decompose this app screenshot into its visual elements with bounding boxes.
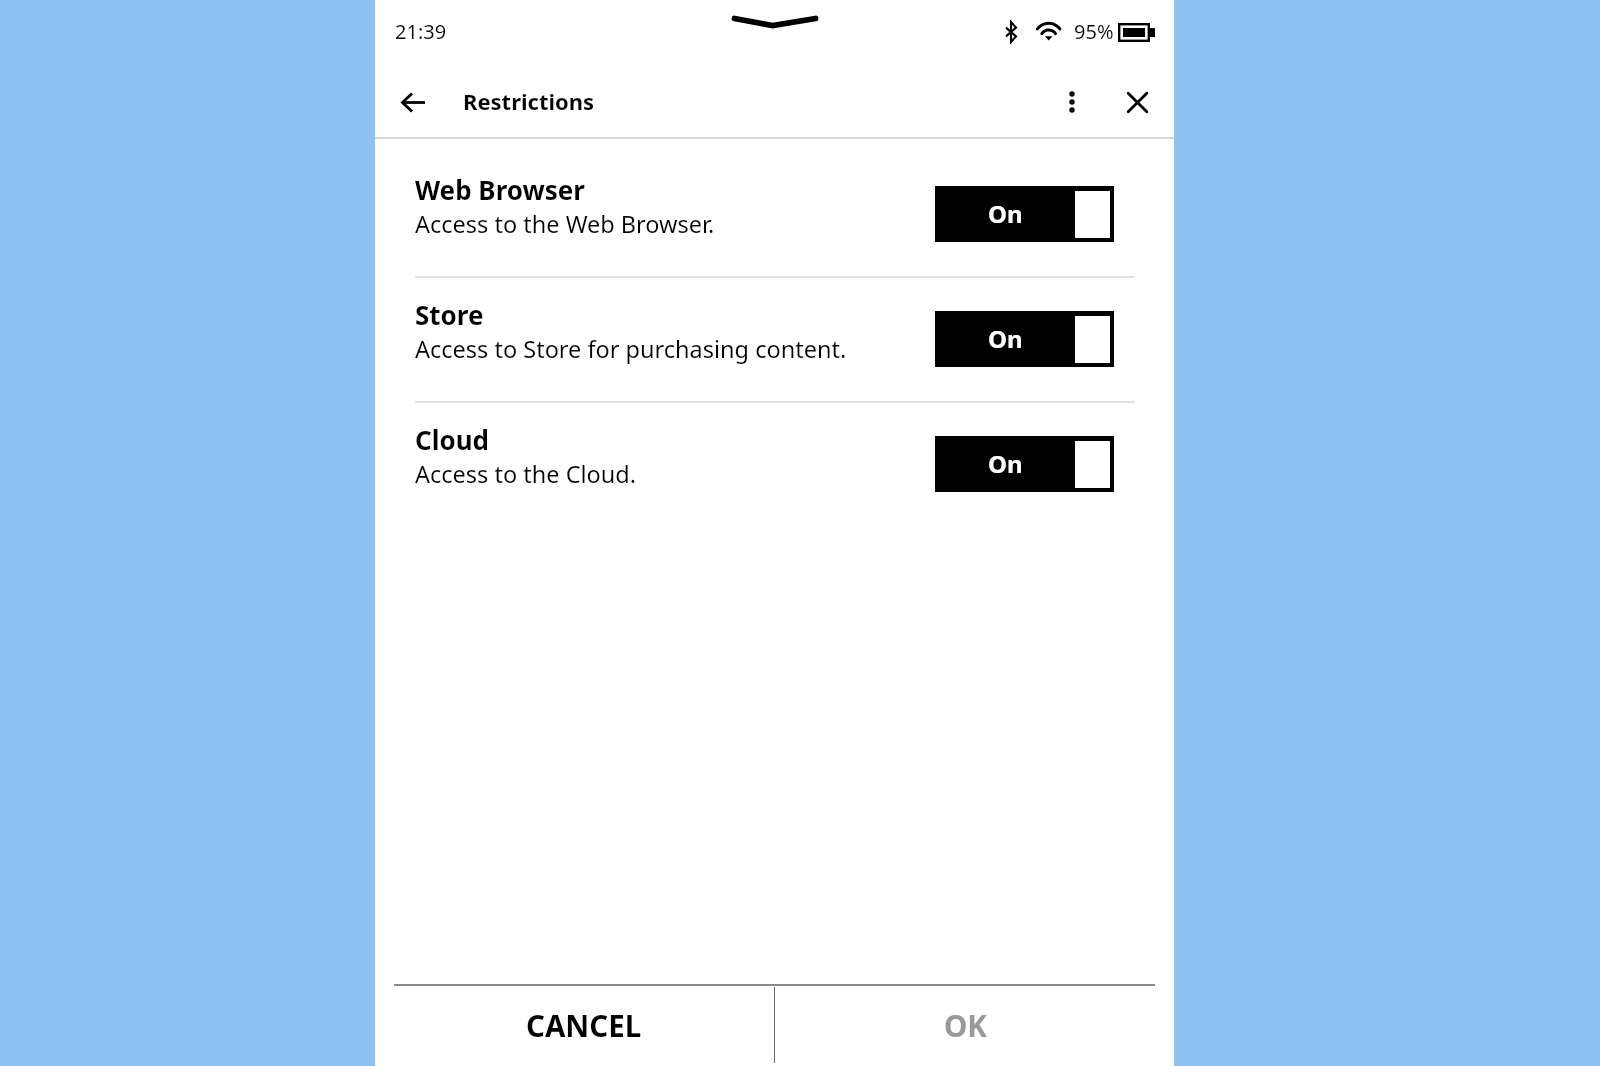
button[interactable]: Cloud <box>375 401 1174 526</box>
button[interactable]: Store <box>375 276 1174 401</box>
button[interactable]: CANCEL <box>394 984 774 1066</box>
button[interactable]: Web Browser <box>375 151 1174 276</box>
staticText: Access to the Cloud. <box>415 458 637 490</box>
button[interactable]: Back <box>388 79 438 125</box>
staticText: OK <box>944 1005 987 1045</box>
staticText: CANCEL <box>526 1005 642 1045</box>
staticText: On <box>988 322 1023 355</box>
button[interactable]: On <box>935 186 1114 242</box>
button[interactable]: OK <box>775 984 1156 1066</box>
button[interactable]: On <box>935 436 1114 492</box>
staticText: Access to the Web Browser. <box>415 208 715 240</box>
staticText: Web Browser <box>415 172 585 207</box>
staticText: Cloud <box>415 422 490 457</box>
staticText: On <box>988 197 1023 230</box>
staticText: Restrictions <box>463 86 595 116</box>
button[interactable]: Close <box>1115 79 1160 125</box>
staticText: Store <box>415 297 484 332</box>
staticText: On <box>988 447 1023 480</box>
staticText: 21:39 <box>395 18 447 45</box>
button[interactable]: On <box>935 311 1114 367</box>
button[interactable]: More options <box>1050 79 1094 125</box>
staticText: Access to Store for purchasing content. <box>415 333 847 365</box>
staticText: 95% <box>1074 18 1114 45</box>
